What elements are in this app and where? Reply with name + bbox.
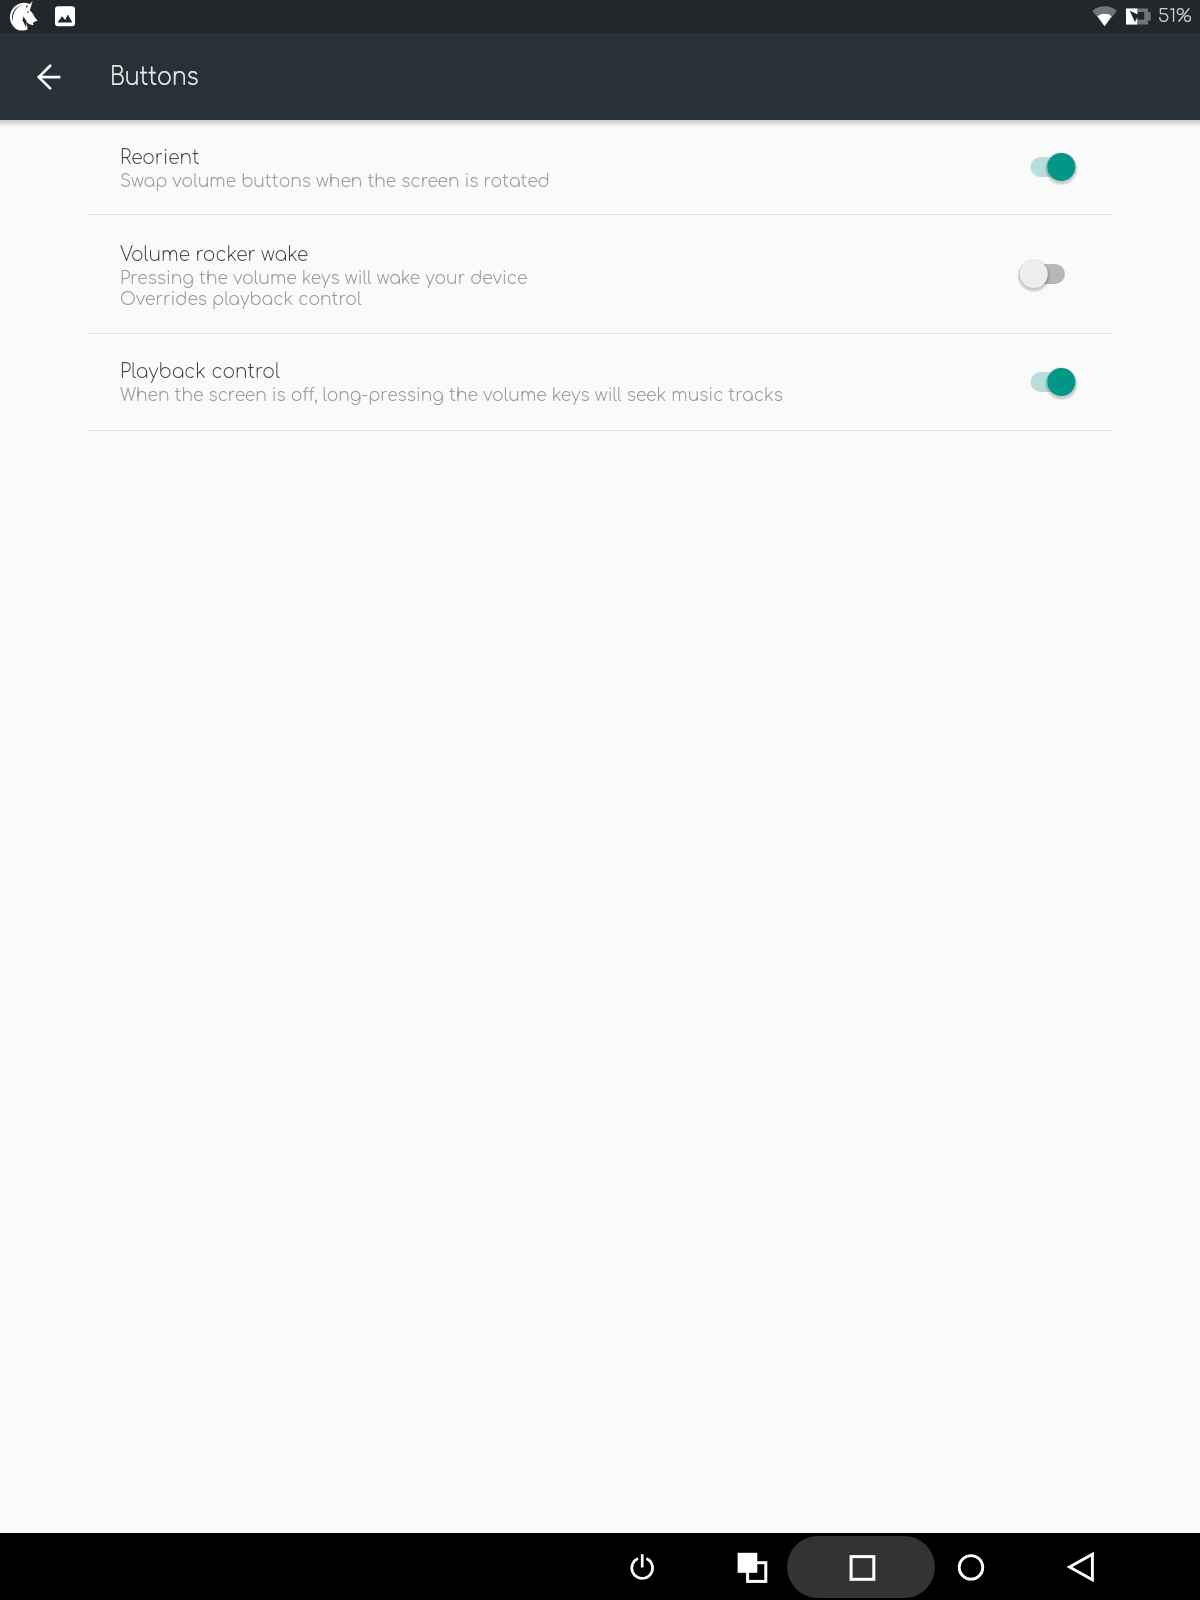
staticText: Buttons [110,63,199,91]
staticText: Playback control [120,360,280,383]
button[interactable]: Playback control [0,334,1200,430]
staticText: 51% [1158,6,1192,26]
button[interactable]: Power [612,1533,672,1593]
staticText: Volume rocker wake [120,243,308,266]
button[interactable]: Switch on [1006,352,1078,412]
staticText: Pressing the volume keys will wake your … [120,268,528,289]
button[interactable]: Back [1050,1533,1110,1593]
button[interactable]: Reorient [0,120,1200,214]
staticText: Reorient [120,146,200,169]
button[interactable]: Switch on [1006,137,1078,197]
button[interactable]: Volume rocker wake [0,215,1200,333]
button[interactable]: Stop [787,1536,935,1598]
button[interactable]: Switch off [1006,244,1078,304]
staticText: Overrides playback control [120,289,362,310]
staticText: Swap volume buttons when the screen is r… [120,171,551,192]
staticText: When the screen is off, long-pressing th… [120,385,784,406]
button[interactable]: Home [941,1533,1001,1593]
other: Stop icon [832,1533,892,1593]
button[interactable]: Recent apps [722,1533,782,1593]
button[interactable]: Navigate up [24,51,76,103]
